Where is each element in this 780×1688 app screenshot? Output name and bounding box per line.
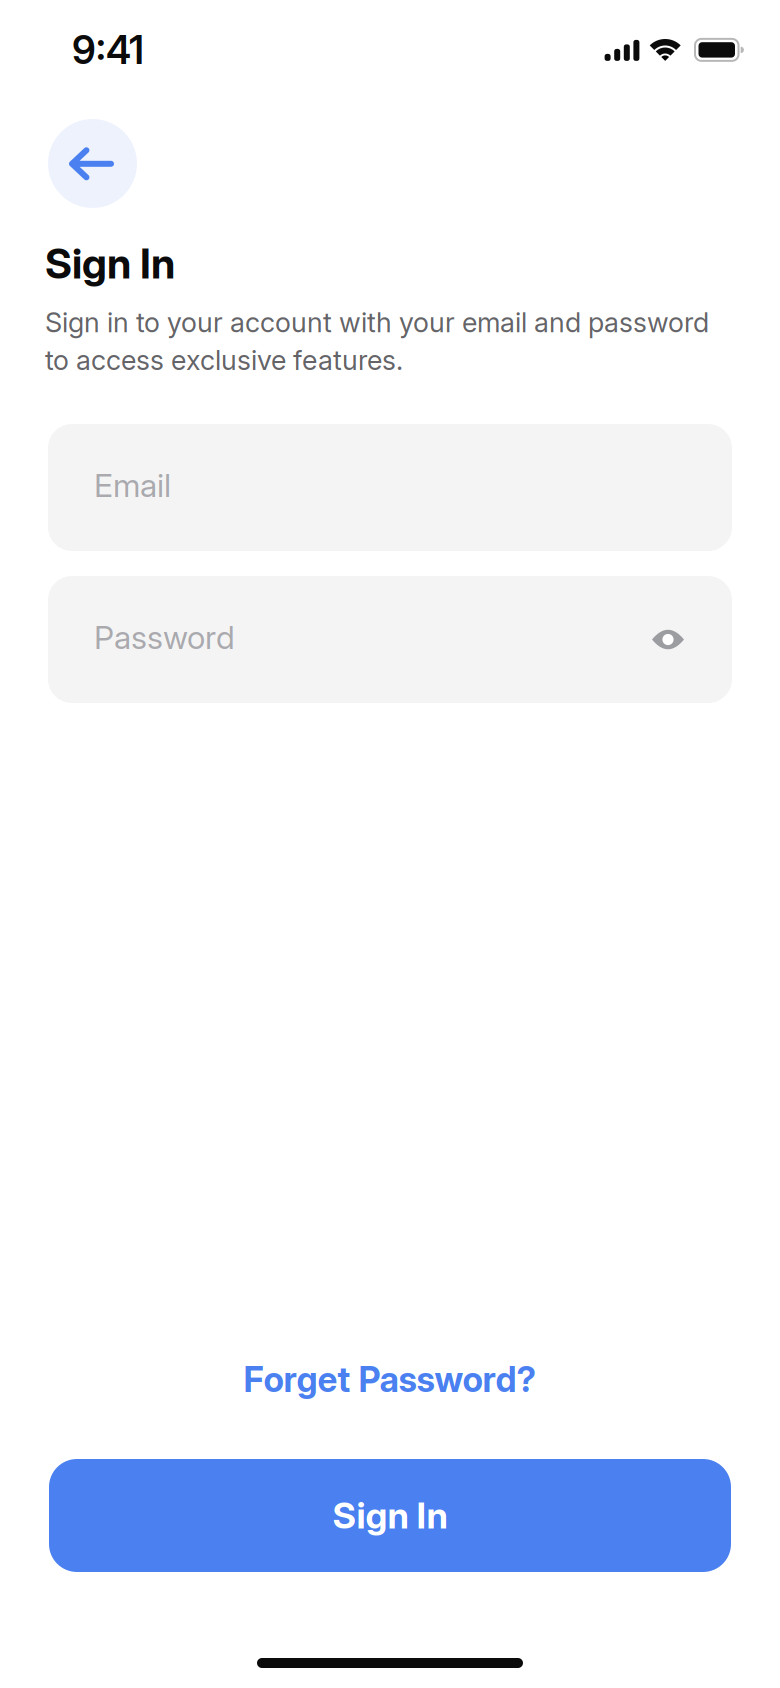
staticText: Sign In	[45, 238, 175, 288]
staticText: to access exclusive features.	[45, 344, 403, 376]
button[interactable]: Sign In	[49, 1459, 731, 1572]
staticText: Sign In	[332, 1494, 447, 1537]
button[interactable]: Forget Password?	[243, 1358, 536, 1400]
staticText: Password	[94, 618, 235, 657]
staticText: 9:41	[72, 26, 144, 73]
button[interactable]: Password	[48, 576, 732, 703]
button[interactable]: Show password	[652, 629, 684, 649]
button[interactable]: Back	[48, 119, 137, 208]
staticText: Sign in to your account with your email …	[45, 306, 709, 339]
button[interactable]: Email	[48, 424, 732, 551]
staticText: Forget Password?	[243, 1358, 536, 1400]
staticText: Email	[94, 466, 171, 505]
